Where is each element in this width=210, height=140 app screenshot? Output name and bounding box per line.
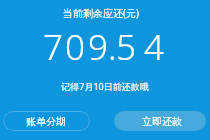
staticText: 0 <box>65 23 85 71</box>
staticText: 记得7月10日前还款哦 <box>61 80 149 92</box>
staticText: 4 <box>144 23 164 71</box>
staticText: . <box>108 23 117 71</box>
button[interactable]: 账单分期 <box>3 111 90 131</box>
staticText: 5 <box>116 23 136 71</box>
staticText: 立即还款 <box>142 115 182 128</box>
staticText: 7 <box>43 23 63 71</box>
staticText: 账单分期 <box>26 115 66 128</box>
staticText: 9 <box>88 23 108 71</box>
staticText: 当前剩余应还(元) <box>63 6 139 20</box>
button[interactable]: 立即还款 <box>114 111 206 131</box>
